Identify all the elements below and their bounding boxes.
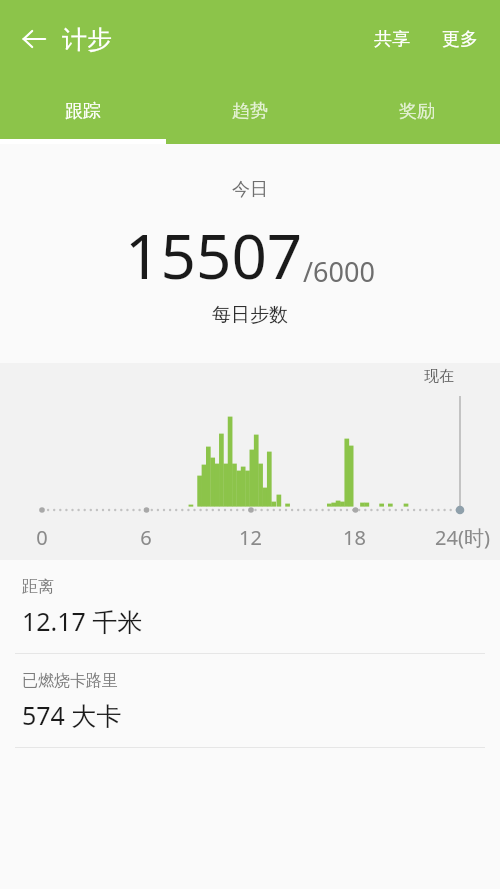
button[interactable]: Back <box>12 17 56 61</box>
staticText: 趋势 <box>232 100 268 123</box>
staticText: 已燃烧卡路里 <box>22 671 118 691</box>
staticText: 每日步数 <box>212 303 288 327</box>
button[interactable]: 计步 <box>56 18 118 61</box>
button[interactable]: 共享 <box>364 18 420 61</box>
staticText: 18 <box>343 524 366 551</box>
staticText: 15507 <box>125 213 303 297</box>
staticText: 共享 <box>374 28 410 51</box>
staticText: 574 大卡 <box>22 698 122 732</box>
staticText: 计步 <box>62 24 112 55</box>
staticText: /6000 <box>303 253 375 290</box>
staticText: 6 <box>140 524 152 551</box>
button[interactable]: 趋势 <box>166 78 333 144</box>
staticText: 12.17 千米 <box>22 604 143 638</box>
staticText: 奖励 <box>399 100 435 123</box>
staticText: 今日 <box>232 178 268 201</box>
staticText: 跟踪 <box>65 100 101 123</box>
staticText: 0 <box>36 524 48 551</box>
button[interactable]: 更多 <box>432 18 488 61</box>
button[interactable]: 距离 <box>0 560 500 653</box>
staticText: 更多 <box>442 28 478 51</box>
staticText: 现在 <box>424 367 454 386</box>
button[interactable]: 已燃烧卡路里 <box>0 654 500 747</box>
button[interactable]: 跟踪 <box>0 78 166 144</box>
button[interactable]: 现在 <box>0 363 500 560</box>
staticText: 距离 <box>22 577 54 597</box>
staticText: 12 <box>239 524 262 551</box>
button[interactable]: 奖励 <box>333 78 500 144</box>
staticText: 24(时) <box>435 524 490 551</box>
